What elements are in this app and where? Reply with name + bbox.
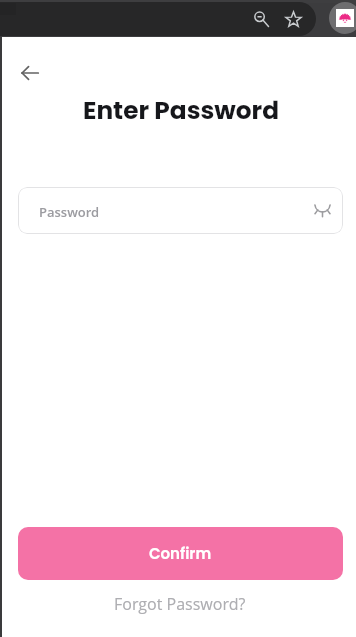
- button[interactable]: Profile: [329, 2, 356, 34]
- staticText: Password: [39, 203, 100, 221]
- button[interactable]: Zoom: [247, 5, 274, 32]
- button[interactable]: Bookmark: [280, 6, 307, 33]
- staticText: Confirm: [149, 543, 212, 564]
- button[interactable]: Password: [18, 187, 343, 234]
- button[interactable]: Back: [14, 57, 46, 89]
- button[interactable]: Forgot Password?: [106, 587, 250, 621]
- button[interactable]: Confirm: [18, 527, 343, 580]
- button[interactable]: Show password: [310, 197, 334, 221]
- staticText: Enter Password: [3, 93, 356, 128]
